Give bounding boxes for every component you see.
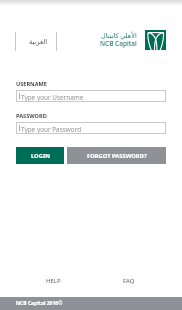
staticText: FAQ (123, 277, 135, 285)
staticText: العربية (29, 38, 48, 46)
staticText: الأهلي كابيتال (101, 31, 137, 40)
staticText: NCB Capital 2016© (16, 300, 63, 307)
staticText: FORGOT PASSWORD? (87, 152, 147, 160)
staticText: USERNAME (16, 80, 47, 88)
staticText: PASSWORD (16, 112, 47, 120)
button[interactable]: FORGOT PASSWORD? (67, 147, 166, 164)
other: NCB Capital logo (145, 30, 166, 50)
staticText: LOGIN (31, 152, 50, 160)
staticText: Type your Password (21, 125, 82, 134)
button[interactable]: العربية (15, 32, 57, 51)
staticText: Type your Username (21, 93, 84, 102)
button[interactable]: Type your Username (16, 90, 166, 102)
staticText: NCB Capital (100, 39, 137, 48)
button[interactable]: LOGIN (16, 147, 64, 164)
staticText: HELP (46, 277, 61, 285)
button[interactable]: HELP (16, 274, 91, 288)
button[interactable]: FAQ (91, 274, 166, 288)
button[interactable]: Type your Password (16, 122, 166, 134)
